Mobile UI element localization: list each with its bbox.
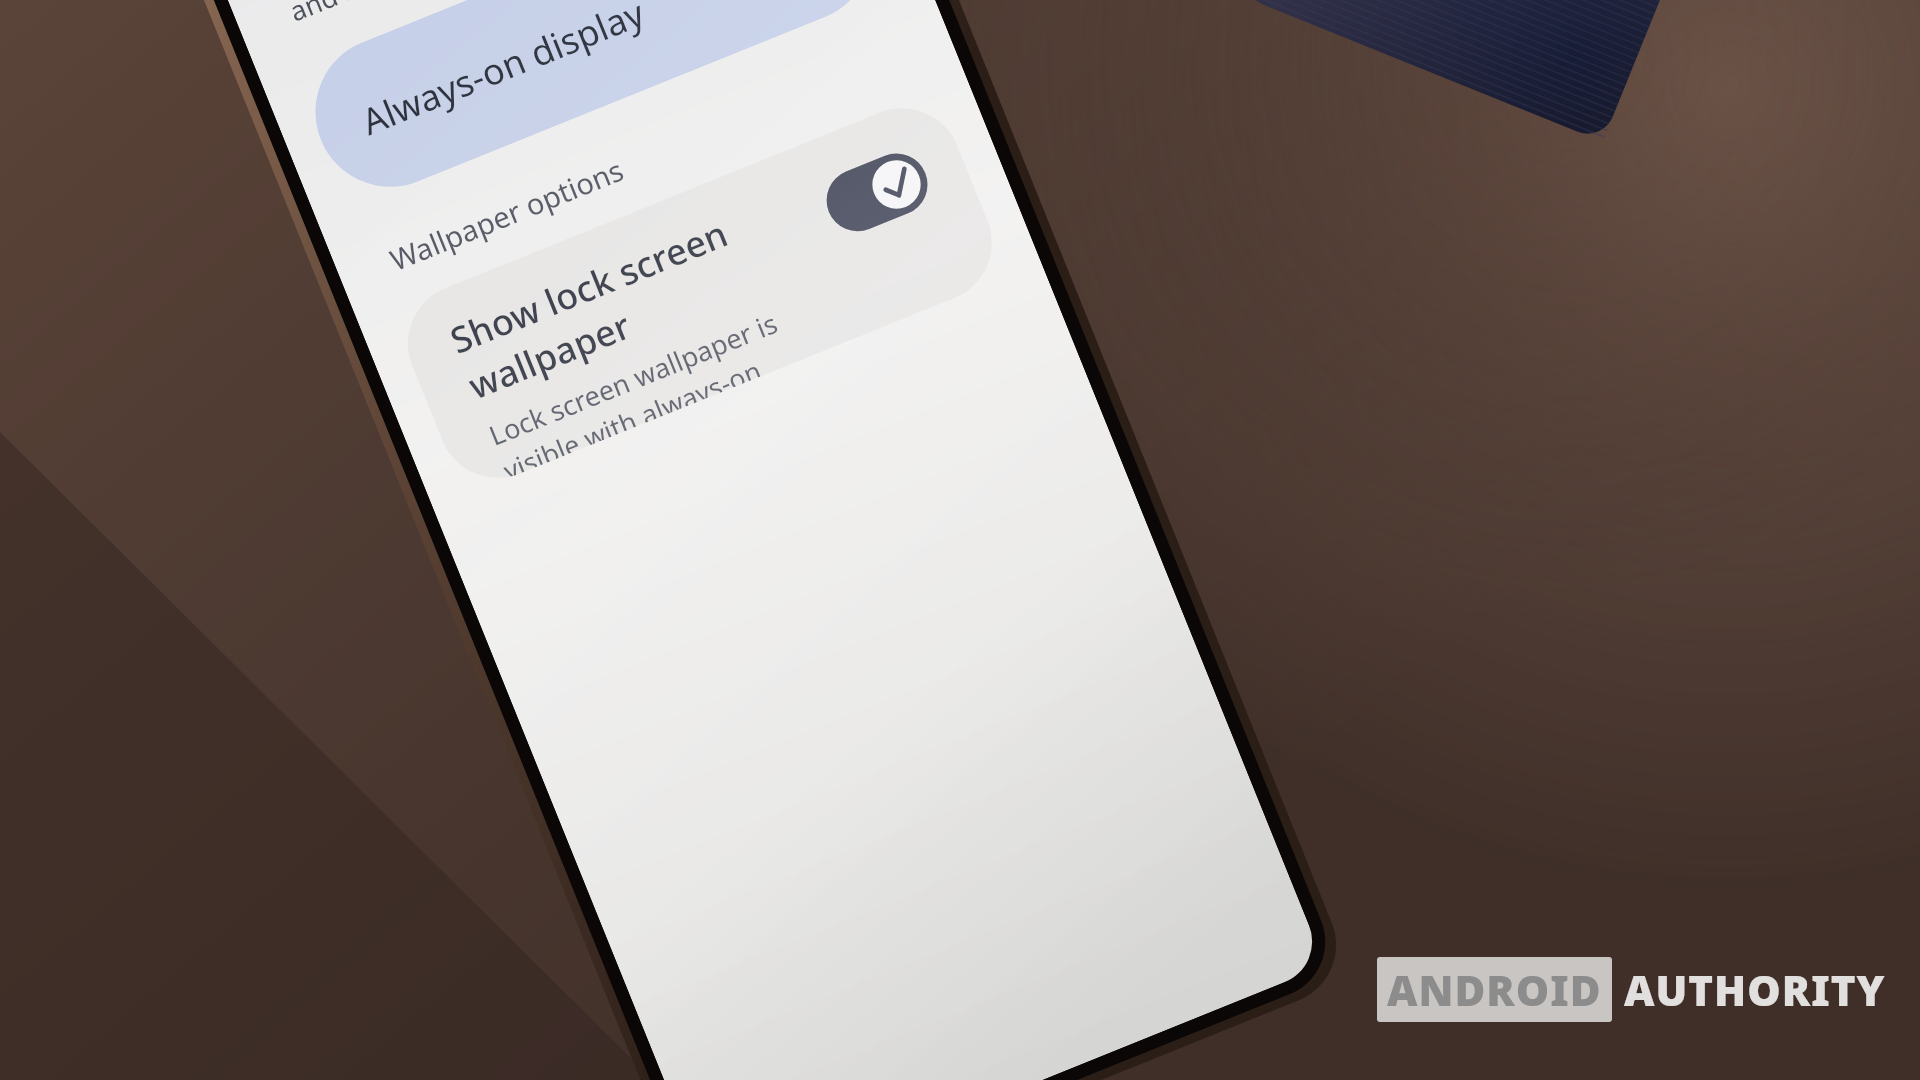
staticText: Lock screen wallpaper is visible with al… bbox=[483, 284, 843, 479]
staticText: Always-on display shows the time, date, … bbox=[269, 0, 806, 30]
button[interactable]: Show lock screen wallpaper toggle bbox=[817, 144, 937, 241]
staticText: ANDROID bbox=[1387, 961, 1602, 1018]
staticText: AUTHORITY bbox=[1624, 961, 1886, 1018]
staticText: Show lock screen wallpaper bbox=[443, 184, 815, 410]
staticText: Wallpaper options bbox=[384, 149, 629, 279]
button[interactable]: Show lock screen wallpaper bbox=[390, 90, 1010, 496]
button[interactable]: Always-on display bbox=[293, 0, 894, 209]
staticText: Always-on display bbox=[355, 0, 652, 146]
